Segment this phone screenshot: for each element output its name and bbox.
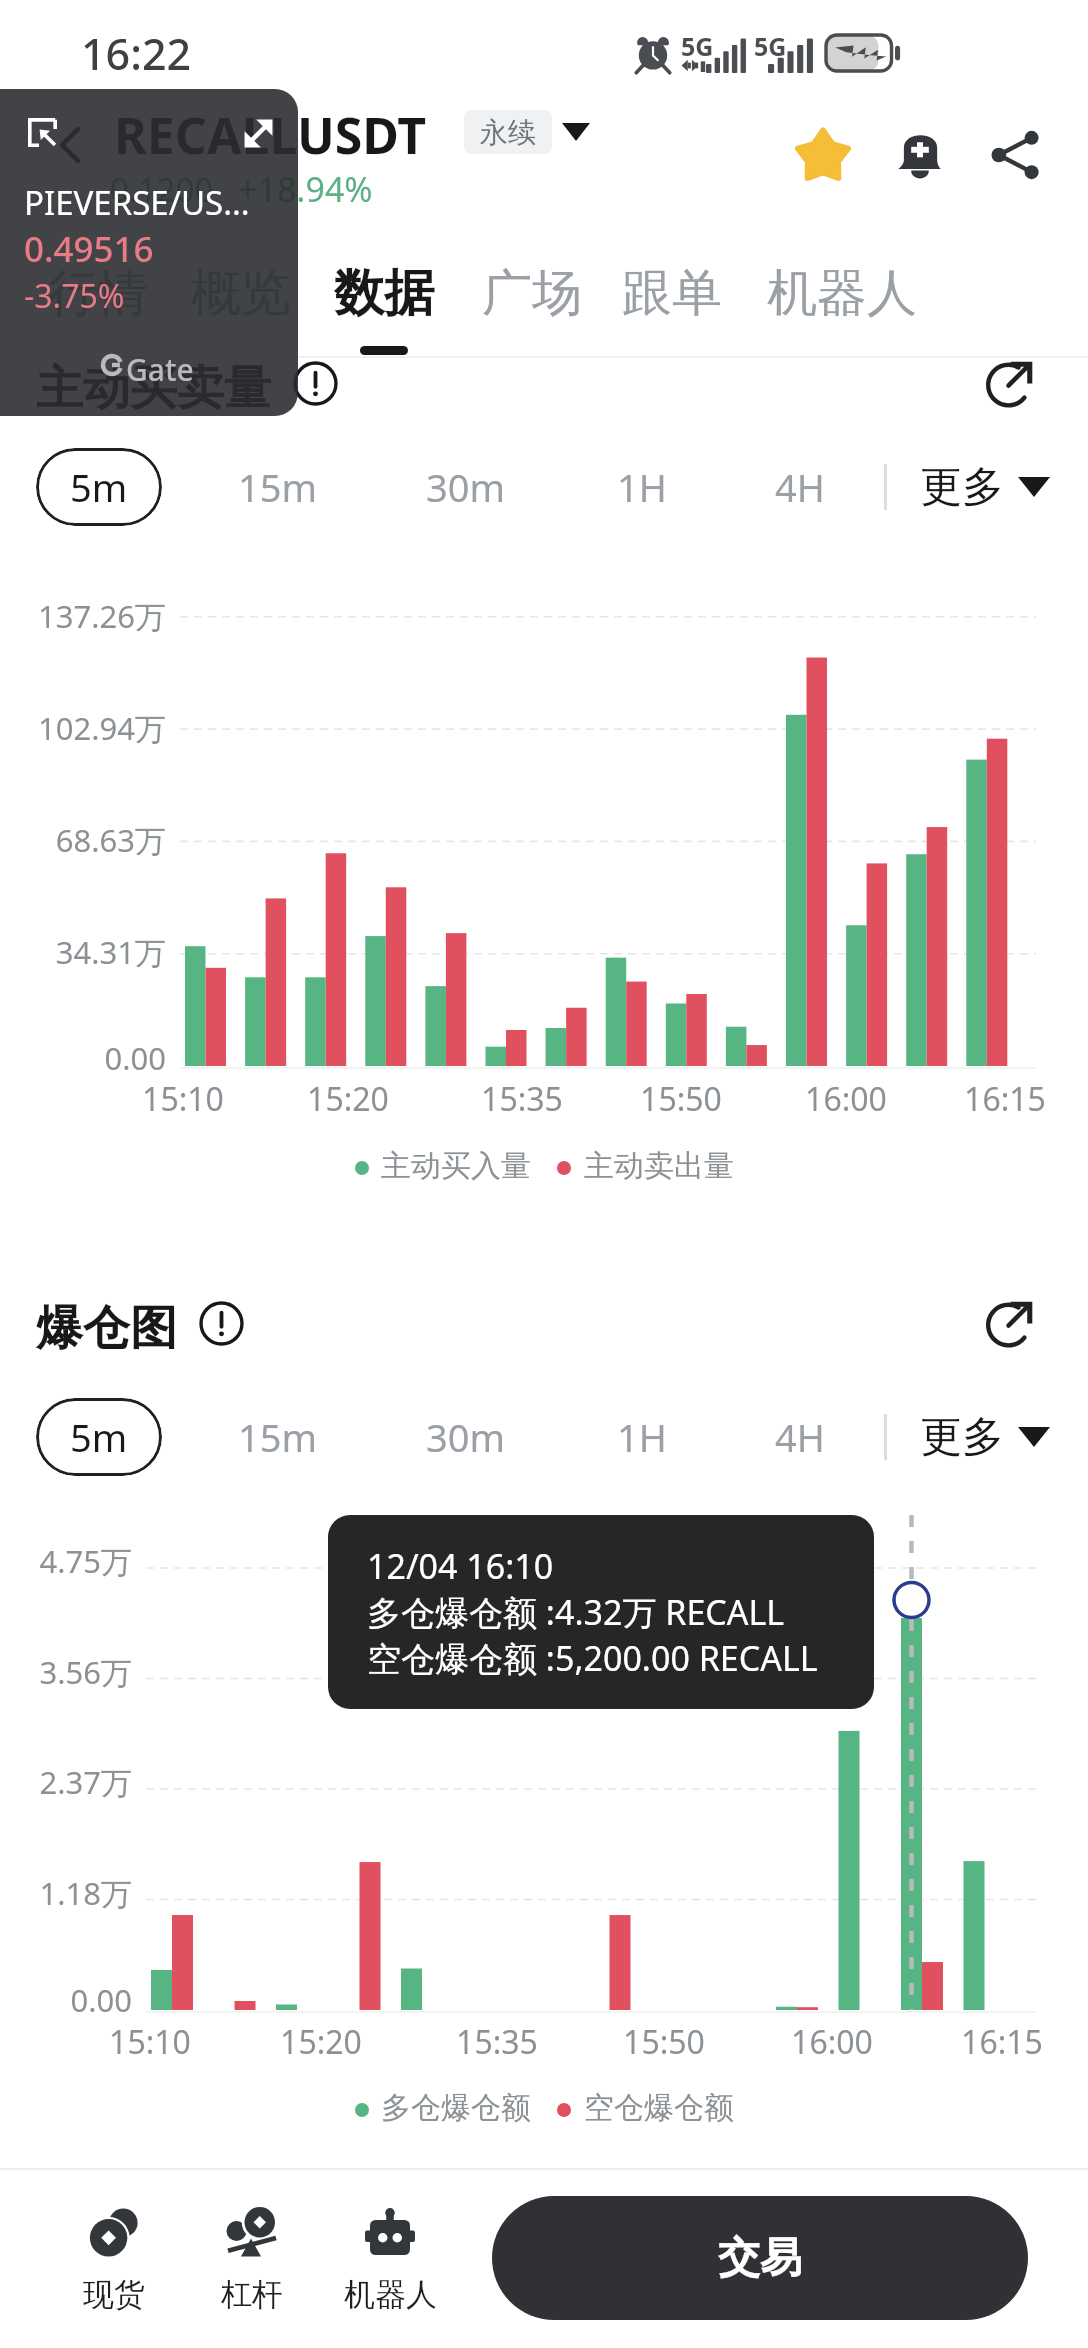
button[interactable]: Info xyxy=(191,1293,251,1353)
staticText: 交易 xyxy=(718,2232,802,2285)
button[interactable]: Info xyxy=(285,353,345,413)
staticText: 15:50 xyxy=(640,1077,722,1121)
button[interactable]: 15m xyxy=(218,448,338,526)
staticText: RECALLUSDT xyxy=(114,101,427,169)
staticText: 行情 xyxy=(48,262,148,325)
button[interactable]: 机器人 xyxy=(754,262,930,356)
staticText: 空仓爆仓额 xyxy=(584,2089,734,2127)
button[interactable]: 广场 xyxy=(468,262,596,356)
staticText: 0.00 xyxy=(104,1037,166,1079)
staticText: 机器人 xyxy=(767,262,917,325)
button[interactable]: 30m xyxy=(406,1398,526,1476)
staticText: 30m xyxy=(426,1411,506,1463)
button[interactable]: 5m xyxy=(36,1398,162,1476)
staticText: 102.94万 xyxy=(38,707,166,749)
staticText: 16:00 xyxy=(791,2020,873,2064)
staticText: 15m xyxy=(238,461,318,513)
staticText: 16:15 xyxy=(961,2020,1043,2064)
staticText: 永续 xyxy=(480,115,536,150)
staticText: 4H xyxy=(775,461,825,513)
staticText: 广场 xyxy=(482,262,582,325)
button[interactable]: 机器人 xyxy=(320,2190,460,2324)
button[interactable]: 现货 xyxy=(44,2190,184,2324)
button[interactable]: Switch contract xyxy=(556,112,596,152)
button[interactable]: Back xyxy=(30,105,110,185)
staticText: 杠杆 xyxy=(221,2275,283,2314)
button[interactable]: 杠杆 xyxy=(182,2190,322,2324)
staticText: +18.94% xyxy=(238,166,373,212)
button[interactable]: 数据 xyxy=(320,262,448,356)
staticText: -3.75% xyxy=(24,274,125,318)
button[interactable]: Share xyxy=(972,111,1060,199)
staticText: 5m xyxy=(70,1411,128,1463)
button[interactable]: 1H xyxy=(582,1398,702,1476)
staticText: 主动卖出量 xyxy=(584,1147,734,1185)
staticText: 0.1200 xyxy=(110,167,214,212)
button[interactable]: 更多 xyxy=(912,448,1058,526)
staticText: 15:50 xyxy=(623,2020,705,2064)
staticText: 15:10 xyxy=(142,1077,224,1121)
staticText: 5m xyxy=(70,461,128,513)
staticText: 137.26万 xyxy=(38,595,166,637)
button[interactable]: 30m xyxy=(406,448,526,526)
staticText: 主动买卖量 xyxy=(36,359,271,418)
button[interactable]: 5m xyxy=(36,448,162,526)
staticText: 4H xyxy=(775,1411,825,1463)
staticText: 16:22 xyxy=(81,24,192,83)
button[interactable]: 4H xyxy=(740,1398,860,1476)
staticText: 0.49516 xyxy=(24,225,154,273)
staticText: 1H xyxy=(617,1411,667,1463)
button[interactable]: 4H xyxy=(740,448,860,526)
staticText: 15:20 xyxy=(280,2020,362,2064)
button[interactable]: 永续 xyxy=(464,110,552,154)
button[interactable]: 交易 xyxy=(492,2196,1028,2320)
staticText: 3.56万 xyxy=(39,1651,132,1693)
button[interactable]: Price alert xyxy=(876,111,964,199)
staticText: 30m xyxy=(426,461,506,513)
other: Expand widget xyxy=(244,119,273,148)
staticText: 16:00 xyxy=(805,1077,887,1121)
staticText: 4.75万 xyxy=(39,1540,132,1582)
staticText: 跟单 xyxy=(622,262,722,325)
button[interactable]: Open full chart xyxy=(974,1287,1046,1359)
staticText: 概览 xyxy=(191,262,291,325)
staticText: 1H xyxy=(617,461,667,513)
staticText: 68.63万 xyxy=(55,819,166,861)
button[interactable]: Favorite xyxy=(779,111,867,199)
button[interactable]: 概览 xyxy=(177,262,305,356)
staticText: 多仓爆仓额 :4.32万 RECALL xyxy=(367,1589,785,1635)
staticText: 数据 xyxy=(334,262,434,325)
staticText: 5G xyxy=(681,29,714,63)
staticText: 更多 xyxy=(920,1411,1004,1464)
staticText: 机器人 xyxy=(344,2275,437,2314)
staticText: Gate xyxy=(126,349,194,390)
staticText: 15:10 xyxy=(109,2020,191,2064)
button[interactable]: Open full chart xyxy=(974,347,1046,419)
button[interactable]: 15m xyxy=(218,1398,338,1476)
staticText: 34.31万 xyxy=(55,931,166,973)
staticText: 主动买入量 xyxy=(381,1147,531,1185)
button[interactable]: 行情 xyxy=(34,262,162,356)
button[interactable]: 1H xyxy=(582,448,702,526)
button[interactable]: 更多 xyxy=(912,1398,1058,1476)
staticText: 2.37万 xyxy=(39,1761,132,1803)
staticText: 更多 xyxy=(920,461,1004,514)
staticText: 1.18万 xyxy=(39,1872,132,1914)
staticText: 16:15 xyxy=(964,1077,1046,1121)
staticText: 12/04 16:10 xyxy=(367,1543,554,1589)
staticText: 多仓爆仓额 xyxy=(381,2089,531,2127)
staticText: 15m xyxy=(238,1411,318,1463)
button[interactable]: 跟单 xyxy=(608,262,736,356)
staticText: 0.00 xyxy=(70,1979,132,2021)
staticText: 5G xyxy=(754,29,787,63)
staticText: PIEVERSE/US... xyxy=(24,180,250,225)
staticText: 空仓爆仓额 :5,200.00 RECALL xyxy=(367,1635,818,1681)
other: Picture in picture xyxy=(28,118,57,147)
button[interactable]: Picture in picture xyxy=(0,89,298,416)
staticText: 爆仓图 xyxy=(36,1299,177,1358)
staticText: 15:35 xyxy=(456,2020,538,2064)
staticText: 15:35 xyxy=(481,1077,563,1121)
staticText: 现货 xyxy=(83,2275,145,2314)
staticText: 15:20 xyxy=(307,1077,389,1121)
